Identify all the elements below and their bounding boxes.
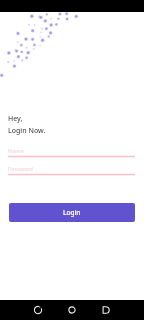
button[interactable]: Login (9, 203, 135, 222)
button[interactable]: Recent apps (96, 300, 116, 320)
button[interactable]: Home (62, 300, 82, 320)
staticText: Login Now. (8, 126, 46, 136)
staticText: Name (8, 147, 24, 154)
button[interactable]: Back (28, 300, 48, 320)
staticText: Login (63, 208, 81, 217)
staticText: Password (8, 165, 33, 172)
staticText: Hey, (8, 114, 23, 124)
